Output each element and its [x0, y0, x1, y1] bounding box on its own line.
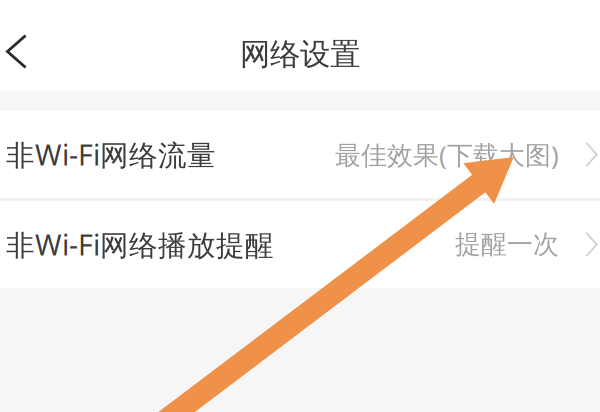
button[interactable]: 非Wi-Fi网络流量 [0, 111, 600, 198]
staticText: 非Wi-Fi网络播放提醒 [6, 225, 274, 264]
staticText: 非Wi-Fi网络流量 [6, 135, 216, 174]
staticText: 网络设置 [240, 35, 360, 74]
button[interactable]: 非Wi-Fi网络播放提醒 [0, 201, 600, 288]
staticText: 提醒一次 [455, 228, 559, 261]
button[interactable]: Back [0, 33, 43, 76]
staticText: 最佳效果(下载大图) [335, 137, 559, 172]
